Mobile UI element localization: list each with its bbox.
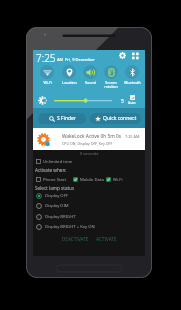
staticText: Wi-Fi [113, 177, 123, 183]
button[interactable]: Display OFF [36, 192, 68, 200]
staticText: Quick connect [103, 115, 137, 122]
button[interactable]: Wi-Fi [36, 65, 58, 85]
staticText: 0 seconds [33, 151, 145, 156]
button[interactable]: Sound [79, 65, 101, 85]
button[interactable]: Display DIM [36, 202, 69, 210]
button[interactable]: ACTIVATE [94, 234, 119, 244]
button[interactable]: DEACTIVATE [60, 234, 91, 244]
staticText: Display DIM [45, 203, 69, 209]
button[interactable]: Display BRIGHT [36, 213, 76, 221]
staticText: S Finder [57, 115, 76, 122]
button[interactable]: Display BRIGHT + Key ON [36, 223, 95, 231]
staticText: Screen rotation [104, 80, 118, 89]
button[interactable]: Bluetooth [121, 65, 143, 85]
button[interactable]: Edit quick settings [132, 52, 139, 59]
staticText: Location [62, 80, 77, 85]
staticText: Bluetooth [124, 80, 141, 85]
staticText: Unlimited time [43, 159, 73, 165]
button[interactable]: Location [58, 65, 80, 85]
staticText: CPU ON, Display OFF, Key OFF [62, 141, 113, 146]
staticText: Auto [128, 100, 136, 105]
button[interactable]: Auto [128, 95, 136, 105]
button[interactable]: Settings [119, 52, 126, 59]
staticText: Display OFF [45, 193, 68, 199]
staticText: Display BRIGHT [45, 214, 76, 220]
button[interactable]: S Finder [38, 113, 86, 124]
staticText: Display BRIGHT + Key ON [45, 224, 95, 230]
button[interactable]: Wi-Fi [106, 176, 123, 183]
staticText: Select lamp status [35, 185, 75, 191]
button[interactable]: Mobile Data [73, 176, 104, 183]
staticText: 7:25 AM [125, 134, 140, 139]
staticText: Phone Start [43, 177, 67, 183]
staticText: Mobile Data [80, 177, 104, 183]
staticText: Wi-Fi [43, 80, 52, 85]
staticText: Sound [85, 80, 96, 85]
button[interactable]: Unlimited time [36, 158, 73, 165]
staticText: 5 [121, 98, 124, 105]
staticText: WakeLock Active 0h 5m 0s [62, 133, 122, 140]
staticText: 7:25 [36, 51, 56, 63]
staticText: Activate when: [35, 167, 67, 173]
button[interactable]: Phone Start [36, 176, 67, 183]
staticText: AM Fri, 9 December [57, 57, 95, 62]
button[interactable]: Quick connect [90, 113, 141, 124]
button[interactable]: Screen rotation [100, 65, 122, 89]
